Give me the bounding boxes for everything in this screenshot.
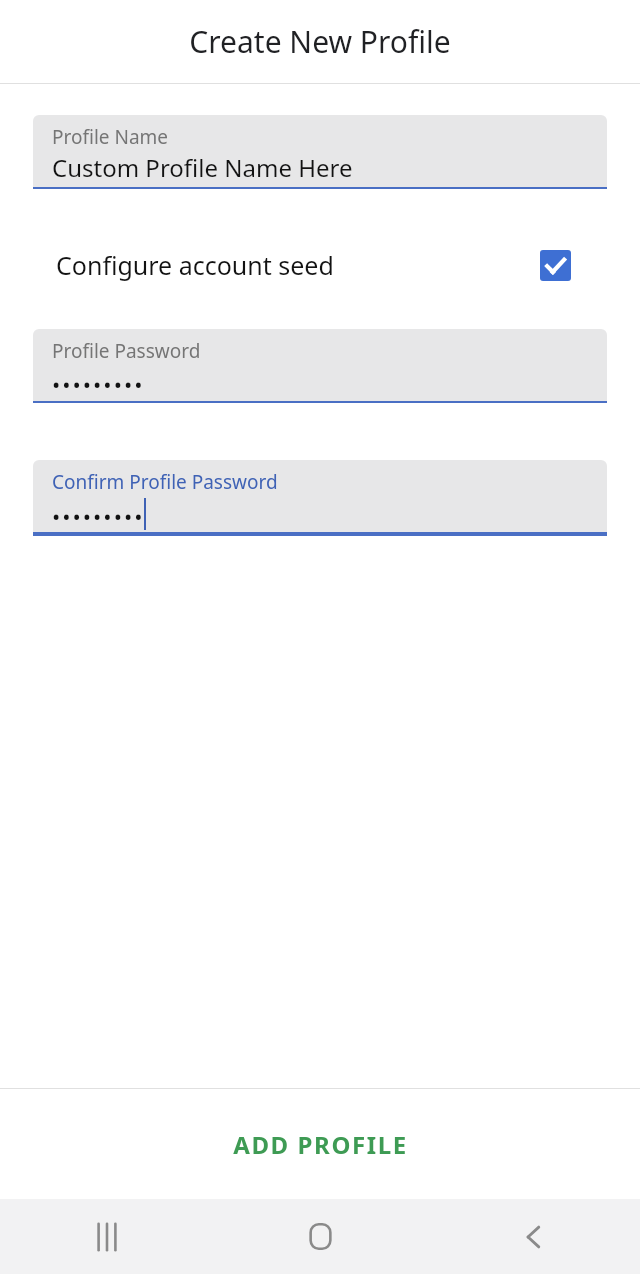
button[interactable]: Profile Password [33,329,607,403]
staticText: ADD PROFILE [233,1128,408,1161]
button[interactable]: Recent apps [0,1199,214,1274]
staticText: Profile Name [52,124,169,150]
button[interactable]: Back [427,1199,640,1274]
staticText: Configure account seed [56,248,540,282]
button[interactable]: ADD PROFILE [0,1089,640,1199]
staticText: Confirm Profile Password [52,469,278,495]
staticText: Create New Profile [189,21,451,62]
button[interactable]: Configure account seed [0,231,640,299]
staticText: ••••••••• [52,501,145,531]
button[interactable]: Profile Name [33,115,607,189]
button[interactable]: Configure account seed checkbox [540,250,571,281]
button[interactable]: Home [214,1199,427,1274]
button[interactable]: Confirm Profile Password [33,460,607,536]
staticText: ••••••••• [52,369,145,399]
staticText: Profile Password [52,338,201,364]
staticText: Custom Profile Name Here [52,151,353,184]
